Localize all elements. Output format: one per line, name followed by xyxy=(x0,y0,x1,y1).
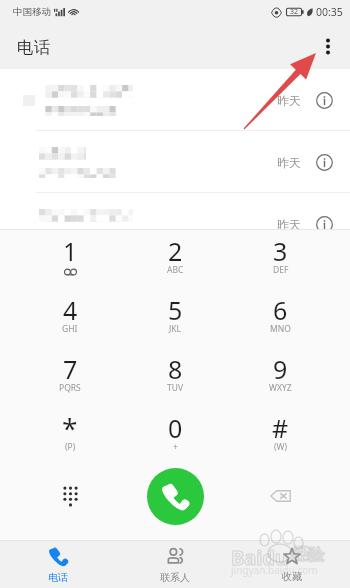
staticText: ABC xyxy=(167,264,184,276)
staticText: 6 xyxy=(273,293,288,327)
button[interactable]: 4 xyxy=(17,291,123,350)
staticText: 1 xyxy=(63,234,78,268)
button[interactable]: 7 xyxy=(17,350,123,409)
button[interactable]: Call details xyxy=(312,88,336,112)
staticText: + xyxy=(173,441,178,453)
staticText: 32 xyxy=(290,7,299,17)
button[interactable]: # xyxy=(228,409,333,468)
button[interactable]: 2 xyxy=(123,232,228,291)
staticText: 4 xyxy=(63,293,78,327)
staticText: (P) xyxy=(65,441,76,453)
button[interactable]: Call details xyxy=(312,150,336,174)
staticText: MNO xyxy=(270,323,291,335)
button[interactable]: More options xyxy=(306,24,350,68)
staticText: Baidu xyxy=(231,544,288,571)
button[interactable]: Call details xyxy=(312,212,336,229)
staticText: 00:35 xyxy=(316,5,343,19)
staticText: 3 xyxy=(273,234,288,268)
button[interactable]: 8 xyxy=(123,350,228,409)
button[interactable]: Delete xyxy=(228,459,333,533)
staticText: 7 xyxy=(63,352,78,386)
button[interactable]: 收藏 xyxy=(233,540,350,588)
button[interactable]: 昨天 xyxy=(0,69,350,131)
button[interactable]: 3 xyxy=(228,232,333,291)
staticText: TUV xyxy=(167,382,184,394)
staticText: 9 xyxy=(273,352,288,386)
staticText: jingyan.baidu.com xyxy=(231,563,318,577)
staticText: 电话 xyxy=(48,571,68,584)
staticText: GHI xyxy=(62,323,78,335)
staticText: PQRS xyxy=(59,382,81,394)
staticText: 电话 xyxy=(17,37,50,58)
staticText: 中国移动 xyxy=(13,6,51,18)
button[interactable]: 昨天 xyxy=(0,193,350,229)
staticText: DEF xyxy=(273,264,289,276)
button[interactable]: 0 xyxy=(123,409,228,468)
staticText: 昨天 xyxy=(277,155,301,170)
staticText: 联系人 xyxy=(160,571,190,584)
staticText: 8 xyxy=(168,352,183,386)
button[interactable]: 电话 xyxy=(0,540,116,588)
staticText: (W) xyxy=(274,441,288,453)
staticText: 5 xyxy=(168,293,183,327)
staticText: 经验 xyxy=(292,545,324,565)
button[interactable]: 联系人 xyxy=(116,540,233,588)
button[interactable]: 9 xyxy=(228,350,333,409)
button[interactable]: 6 xyxy=(228,291,333,350)
staticText: 昨天 xyxy=(277,217,301,229)
button[interactable]: * xyxy=(17,409,123,468)
button[interactable]: Call xyxy=(147,468,204,525)
staticText: JKL xyxy=(169,323,182,335)
button[interactable]: 5 xyxy=(123,291,228,350)
staticText: 昨天 xyxy=(277,93,301,108)
staticText: WXYZ xyxy=(269,382,292,394)
button[interactable]: Keypad xyxy=(17,459,123,533)
button[interactable]: 昨天 xyxy=(0,131,350,193)
staticText: 收藏 xyxy=(282,570,302,583)
button[interactable]: 1 xyxy=(17,232,123,291)
staticText: # xyxy=(272,411,289,445)
staticText: 0 xyxy=(168,411,183,445)
staticText: 2 xyxy=(168,234,183,268)
staticText: * xyxy=(62,409,78,447)
